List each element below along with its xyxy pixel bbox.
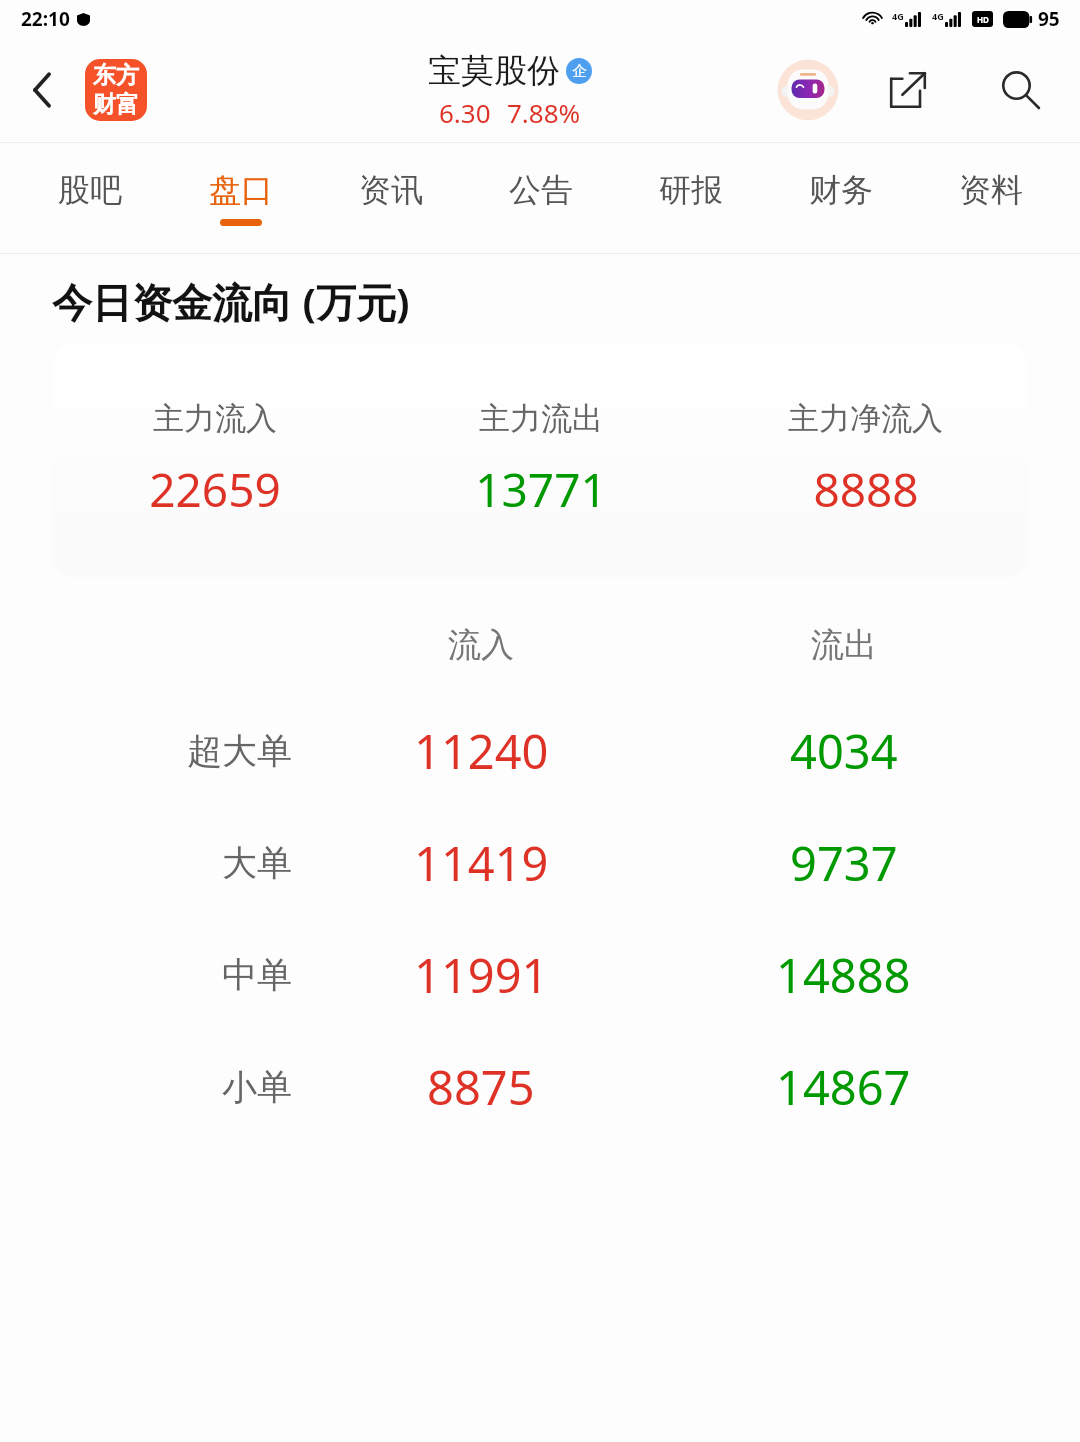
button[interactable]: 超大单	[0, 695, 1080, 807]
staticText: 财富	[93, 90, 139, 119]
staticText: 流入	[448, 624, 514, 666]
button[interactable]: 大单	[0, 807, 1080, 919]
staticText: 8875	[427, 1055, 535, 1119]
staticText: 公告	[509, 170, 573, 210]
button[interactable]: 中单	[0, 919, 1080, 1031]
staticText: 22659	[149, 458, 281, 521]
button[interactable]: Search	[984, 54, 1056, 126]
staticText: 主力流入	[153, 399, 277, 438]
staticText: 流出	[811, 624, 877, 666]
staticText: 盘口	[209, 170, 273, 210]
staticText: 11991	[414, 943, 549, 1007]
staticText: 大单	[222, 841, 292, 885]
staticText: 4034	[790, 719, 898, 783]
staticText: 6.30	[439, 95, 491, 130]
staticText: 今日资金流向 (万元)	[52, 274, 410, 329]
staticText: 超大单	[187, 729, 292, 773]
staticText: 企	[572, 62, 587, 81]
staticText: 东方	[93, 61, 139, 90]
staticText: 财务	[809, 170, 873, 210]
staticText: 95	[1038, 6, 1060, 32]
button[interactable]: Share	[876, 58, 940, 122]
staticText: 22:10	[21, 6, 70, 32]
button[interactable]: 公告	[466, 143, 616, 253]
staticText: 8888	[813, 458, 919, 521]
staticText: 9737	[790, 831, 898, 895]
button[interactable]: 股吧	[14, 143, 165, 253]
button[interactable]: 资讯	[316, 143, 466, 253]
staticText: 14867	[776, 1055, 911, 1119]
button[interactable]: Back	[14, 62, 70, 118]
button[interactable]: 小单	[0, 1031, 1080, 1143]
button[interactable]: 主力流入	[52, 343, 1028, 577]
staticText: 宝莫股份	[428, 50, 560, 92]
staticText: 4G	[932, 10, 944, 22]
button[interactable]: AI assistant	[776, 58, 840, 122]
button[interactable]: 盘口	[165, 143, 316, 253]
staticText: 14888	[776, 943, 911, 1007]
staticText: 主力流出	[479, 399, 603, 438]
staticText: 主力净流入	[788, 399, 943, 438]
staticText: 11419	[414, 831, 549, 895]
staticText: 13771	[475, 458, 607, 521]
staticText: 资讯	[359, 170, 423, 210]
staticText: 7.88%	[507, 95, 581, 130]
staticText: 4G	[892, 10, 904, 22]
button[interactable]: 财务	[766, 143, 916, 253]
staticText: HD	[977, 14, 989, 25]
staticText: 中单	[222, 953, 292, 997]
button[interactable]: East Money home	[85, 59, 147, 121]
staticText: 11240	[414, 719, 549, 783]
button[interactable]: 研报	[616, 143, 766, 253]
staticText: 资料	[959, 170, 1023, 210]
button[interactable]: 资料	[916, 143, 1066, 253]
staticText: 小单	[222, 1065, 292, 1109]
staticText: 股吧	[58, 170, 122, 210]
staticText: 研报	[659, 170, 723, 210]
